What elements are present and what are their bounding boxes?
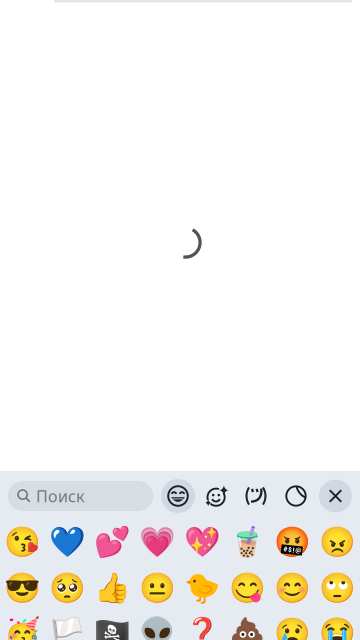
staticText: 🧋 [229,525,266,559]
staticText: 🤬 [274,525,311,559]
button[interactable]: 😭 [315,611,360,640]
button[interactable]: Close [319,479,352,512]
button[interactable]: 💖 [180,520,225,564]
button[interactable]: 💩 [225,611,270,640]
button[interactable]: 👍 [90,566,135,610]
staticText: 😢 [274,616,311,640]
staticText: 🥳 [4,616,41,640]
staticText: 😘 [4,525,41,559]
staticText: 💙 [49,525,86,559]
button[interactable]: Smileys and people [161,479,195,513]
button[interactable]: 👽 [135,611,180,640]
staticText: 😐 [139,571,176,605]
staticText: 💕 [94,525,131,559]
button[interactable]: Kaomoji [239,479,273,513]
button[interactable]: 😘 [0,520,45,564]
button[interactable]: 🐤 [180,566,225,610]
button[interactable]: 😋 [225,566,270,610]
staticText: 💖 [184,525,221,559]
staticText: 🙄 [319,571,356,605]
button[interactable]: 🧋 [225,520,270,564]
button[interactable]: Memoji stickers [200,479,234,513]
button[interactable]: 🙄 [315,566,360,610]
staticText: 😋 [229,571,266,605]
staticText: 😭 [319,616,356,640]
staticText: Поиск [36,485,84,507]
button[interactable]: 😐 [135,566,180,610]
button[interactable]: 🥳 [0,611,45,640]
button[interactable]: 😎 [0,566,45,610]
staticText: 😠 [319,525,356,559]
staticText: 👽 [139,616,176,640]
button[interactable]: 💙 [45,520,90,564]
button[interactable]: 💗 [135,520,180,564]
button[interactable]: 😊 [270,566,315,610]
button[interactable]: 🏴‍☠️ [90,611,135,640]
button[interactable]: 😠 [315,520,360,564]
staticText: 💩 [229,616,266,640]
button[interactable]: 🥺 [45,566,90,610]
staticText: 🏳️ [49,616,86,640]
staticText: 😊 [274,571,311,605]
button[interactable]: 🏳️ [45,611,90,640]
button[interactable]: 🤬 [270,520,315,564]
staticText: 🏴‍☠️ [94,616,131,640]
button[interactable]: Stickers [279,479,313,513]
staticText: 🥺 [49,571,86,605]
staticText: 💗 [139,525,176,559]
staticText: 🐤 [184,571,221,605]
staticText: 😎 [4,571,41,605]
staticText: ❓ [184,616,221,640]
button[interactable]: ❓ [180,611,225,640]
button[interactable]: 💕 [90,520,135,564]
staticText: 👍 [94,571,131,605]
button[interactable]: Поиск [8,481,153,511]
button[interactable]: 😢 [270,611,315,640]
